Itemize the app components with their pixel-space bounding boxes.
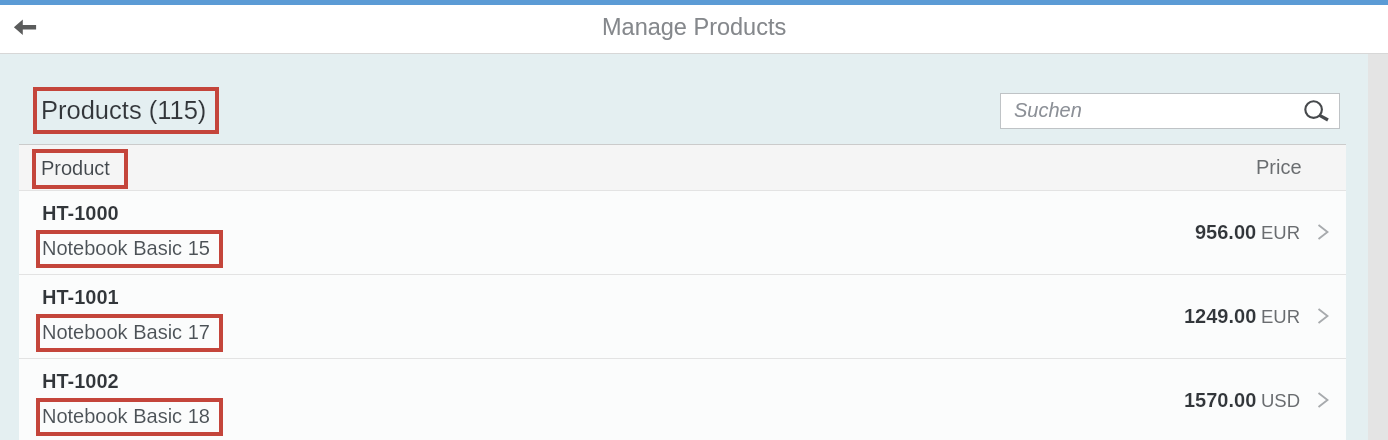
staticText: HT-1000: [42, 202, 119, 224]
staticText: Notebook Basic 17: [42, 321, 210, 343]
staticText: EUR: [1261, 222, 1301, 243]
staticText: HT-1001: [42, 286, 119, 308]
staticText: Suchen: [1014, 99, 1082, 121]
staticText: Price: [1256, 156, 1302, 178]
staticText: 1570.00: [1184, 389, 1257, 411]
staticText: 1249.00: [1184, 305, 1257, 327]
staticText: Notebook Basic 18: [42, 405, 210, 427]
staticText: 956.00: [1195, 221, 1257, 243]
button[interactable]: HT-1000: [19, 191, 1346, 274]
staticText: Manage Products: [602, 14, 787, 40]
button[interactable]: Search: [1303, 98, 1329, 124]
button[interactable]: Suchen: [1000, 93, 1340, 129]
button[interactable]: HT-1002: [19, 359, 1346, 440]
button[interactable]: Back: [0, 2, 50, 51]
staticText: EUR: [1261, 306, 1301, 327]
button[interactable]: HT-1001: [19, 275, 1346, 358]
staticText: Notebook Basic 15: [42, 237, 210, 259]
staticText: Products (115): [41, 96, 207, 124]
staticText: USD: [1261, 390, 1301, 411]
staticText: Product: [41, 157, 110, 179]
staticText: HT-1002: [42, 370, 119, 392]
